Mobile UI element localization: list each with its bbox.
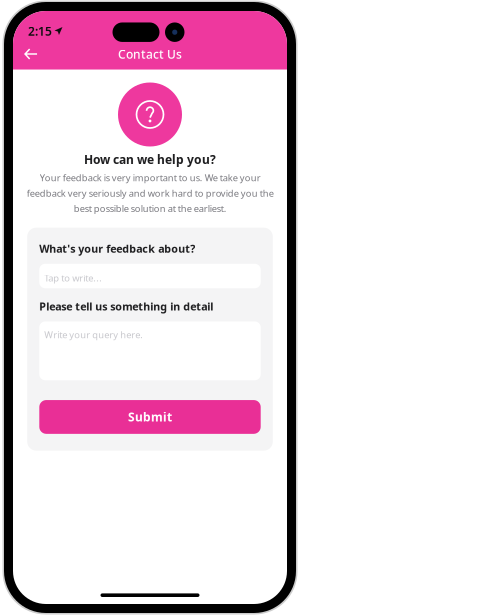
staticText: Your feedback is very important to us. W… [26, 171, 273, 215]
button[interactable]: Back [13, 42, 49, 66]
staticText: Write your query here. [44, 328, 143, 341]
staticText: Contact Us [118, 46, 182, 62]
staticText: 2:15 [28, 23, 52, 39]
staticText: What's your feedback about? [39, 242, 195, 256]
staticText: Submit [128, 409, 172, 425]
staticText: Tap to write... [44, 272, 102, 284]
staticText: Please tell us something in detail [39, 299, 213, 313]
button[interactable]: Submit [39, 400, 261, 434]
staticText: How can we help you? [84, 151, 216, 167]
